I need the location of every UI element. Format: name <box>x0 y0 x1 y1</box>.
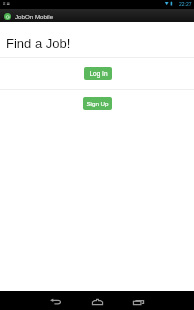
staticText: Sign Up <box>86 100 109 107</box>
staticText: JobOn Mobile <box>15 13 54 20</box>
button[interactable]: Home <box>78 291 116 310</box>
button[interactable]: Sign Up <box>83 97 112 110</box>
button[interactable]: Recent apps <box>119 291 157 310</box>
staticText: Log In <box>89 70 108 77</box>
button[interactable]: Back <box>36 291 74 310</box>
staticText: 22:27 <box>179 1 192 7</box>
button[interactable]: Log In <box>84 67 112 80</box>
button[interactable]: JobOn Mobile <box>0 9 194 22</box>
staticText: Find a Job! <box>6 36 71 51</box>
